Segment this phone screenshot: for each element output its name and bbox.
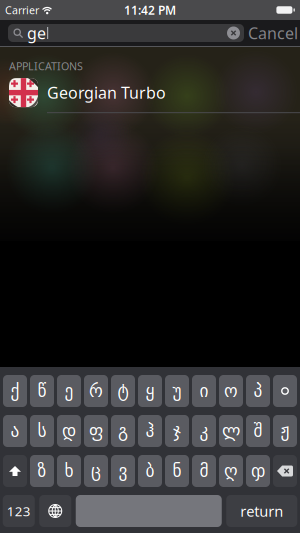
button[interactable]: ჯ xyxy=(165,415,189,447)
button[interactable]: ჰ xyxy=(138,415,162,447)
staticText: ჯ xyxy=(173,421,181,441)
button[interactable]: გ xyxy=(111,415,135,447)
staticText: პ xyxy=(253,381,262,401)
staticText: დ xyxy=(62,421,76,441)
button[interactable]: ზ xyxy=(30,455,54,487)
staticText: ბ xyxy=(145,461,154,481)
staticText: ო xyxy=(224,381,238,401)
staticText: რ xyxy=(89,381,103,401)
staticText: ე xyxy=(64,381,73,401)
button[interactable]: ლ xyxy=(219,415,243,447)
button[interactable]: ა xyxy=(3,415,27,447)
staticText: ვ xyxy=(118,461,127,481)
button[interactable]: პ xyxy=(246,375,270,407)
staticText: ყ xyxy=(145,381,154,401)
button[interactable]: Clear text xyxy=(227,26,240,39)
staticText: ხ xyxy=(64,461,73,481)
button[interactable]: ° xyxy=(273,375,297,407)
staticText: ჶ xyxy=(251,461,265,481)
button[interactable]: Next keyboard xyxy=(39,495,71,527)
staticText: ზ xyxy=(37,461,46,481)
staticText: მ xyxy=(199,461,208,481)
staticText: Georgian Turbo xyxy=(47,82,166,103)
button[interactable]: წ xyxy=(30,375,54,407)
button[interactable]: Space xyxy=(76,495,222,527)
button[interactable]: Numbers xyxy=(3,495,35,527)
staticText: ნ xyxy=(172,461,181,481)
staticText: გ xyxy=(118,421,128,441)
staticText: ჟ xyxy=(280,421,289,441)
staticText: ტ xyxy=(117,381,128,401)
button[interactable]: ფ xyxy=(84,415,108,447)
staticText: ჰ xyxy=(145,421,154,441)
staticText: კ xyxy=(199,421,208,441)
button[interactable]: ბ xyxy=(138,455,162,487)
staticText: Cancel xyxy=(248,22,298,44)
button[interactable]: ქ xyxy=(3,375,27,407)
button[interactable]: ც xyxy=(84,455,108,487)
button[interactable]: მ xyxy=(192,455,216,487)
button[interactable]: ტ xyxy=(111,375,135,407)
button[interactable]: ვ xyxy=(111,455,135,487)
staticText: ქ xyxy=(10,381,19,401)
button[interactable]: უ xyxy=(165,375,189,407)
button[interactable]: Georgian Turbo xyxy=(0,73,300,112)
button[interactable]: რ xyxy=(84,375,108,407)
staticText: ი xyxy=(199,381,208,401)
button[interactable]: შ xyxy=(246,415,270,447)
staticText: წ xyxy=(37,381,46,401)
button[interactable]: კ xyxy=(192,415,216,447)
staticText: ც xyxy=(91,461,101,481)
button[interactable]: Delete xyxy=(273,455,297,487)
button[interactable]: ე xyxy=(57,375,81,407)
button[interactable]: ნ xyxy=(165,455,189,487)
staticText: Carrier xyxy=(5,3,39,17)
button[interactable]: Shift xyxy=(3,455,27,487)
button[interactable]: ს xyxy=(30,415,54,447)
button[interactable]: Cancel xyxy=(248,24,298,42)
staticText: ფ xyxy=(89,421,103,441)
button[interactable]: ხ xyxy=(57,455,81,487)
staticText: ლ xyxy=(222,421,240,441)
staticText: ge xyxy=(27,22,46,44)
button[interactable]: ჶ xyxy=(246,455,270,487)
button[interactable]: Return xyxy=(226,495,297,527)
staticText: ღ xyxy=(224,461,238,481)
button[interactable]: ი xyxy=(192,375,216,407)
staticText: შ xyxy=(253,421,262,441)
staticText: ს xyxy=(37,421,46,441)
button[interactable]: ო xyxy=(219,375,243,407)
button[interactable]: ჟ xyxy=(273,415,297,447)
staticText: ა xyxy=(10,421,19,441)
button[interactable]: დ xyxy=(57,415,81,447)
staticText: უ xyxy=(172,381,181,401)
staticText: APPLICATIONS xyxy=(9,59,83,73)
staticText: return xyxy=(240,501,283,521)
button[interactable]: ღ xyxy=(219,455,243,487)
staticText: 11:42 PM xyxy=(124,2,176,18)
button[interactable]: ყ xyxy=(138,375,162,407)
staticText: 123 xyxy=(7,502,31,520)
